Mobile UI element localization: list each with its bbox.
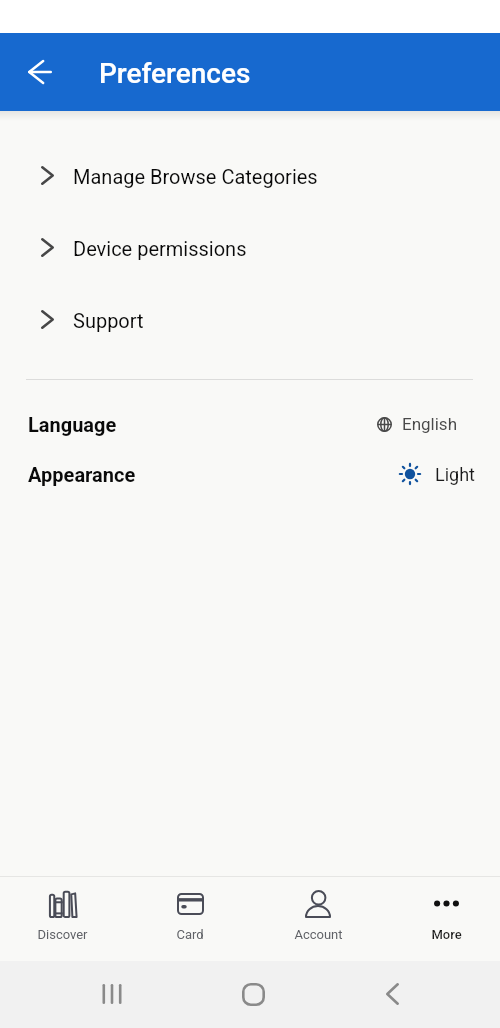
staticText: Card: [176, 927, 204, 942]
button[interactable]: Device permissions: [0, 212, 500, 284]
button[interactable]: Support: [0, 284, 500, 356]
staticText: Preferences: [99, 57, 251, 90]
staticText: Light: [435, 464, 475, 485]
button[interactable]: Card: [126, 877, 254, 942]
button[interactable]: Discover: [0, 877, 126, 942]
button[interactable]: More: [382, 877, 500, 942]
staticText: More: [431, 927, 462, 942]
button[interactable]: Back: [18, 50, 62, 94]
staticText: Account: [294, 927, 343, 942]
button[interactable]: Account: [254, 877, 382, 942]
staticText: English: [402, 414, 458, 434]
staticText: Support: [73, 309, 144, 332]
button[interactable]: Appearance: [28, 457, 475, 491]
button[interactable]: Language: [28, 407, 458, 441]
button[interactable]: Back: [375, 977, 409, 1011]
staticText: Appearance: [28, 463, 136, 486]
staticText: Device permissions: [73, 237, 247, 260]
staticText: Language: [28, 413, 117, 436]
button[interactable]: Recent apps: [95, 977, 129, 1011]
button[interactable]: Home: [236, 977, 270, 1011]
button[interactable]: Manage Browse Categories: [0, 140, 500, 212]
staticText: Discover: [37, 927, 88, 942]
staticText: Manage Browse Categories: [73, 165, 318, 188]
